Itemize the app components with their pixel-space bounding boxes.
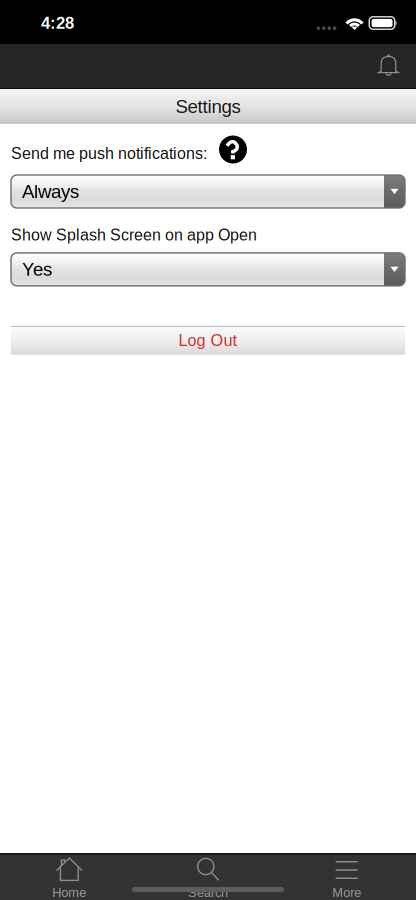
staticText: 4:28 (41, 14, 74, 32)
staticText: Search (188, 885, 228, 900)
staticText: More (332, 885, 361, 900)
staticText: Always (22, 181, 79, 202)
button[interactable]: Always (11, 175, 405, 208)
staticText: Show Splash Screen on app Open (11, 226, 257, 244)
button[interactable]: Notifications (367, 46, 410, 86)
button[interactable]: Home (0, 855, 139, 900)
button[interactable]: Log Out (11, 326, 405, 355)
button[interactable]: Help (219, 135, 247, 171)
staticText: Settings (175, 96, 240, 117)
button[interactable]: Search (139, 855, 277, 900)
button[interactable]: More (277, 855, 416, 900)
staticText: Log Out (178, 331, 237, 349)
staticText: Home (52, 885, 86, 900)
staticText: Send me push notifications: (11, 145, 207, 162)
staticText: Yes (22, 259, 52, 280)
button[interactable]: Yes (11, 253, 405, 286)
